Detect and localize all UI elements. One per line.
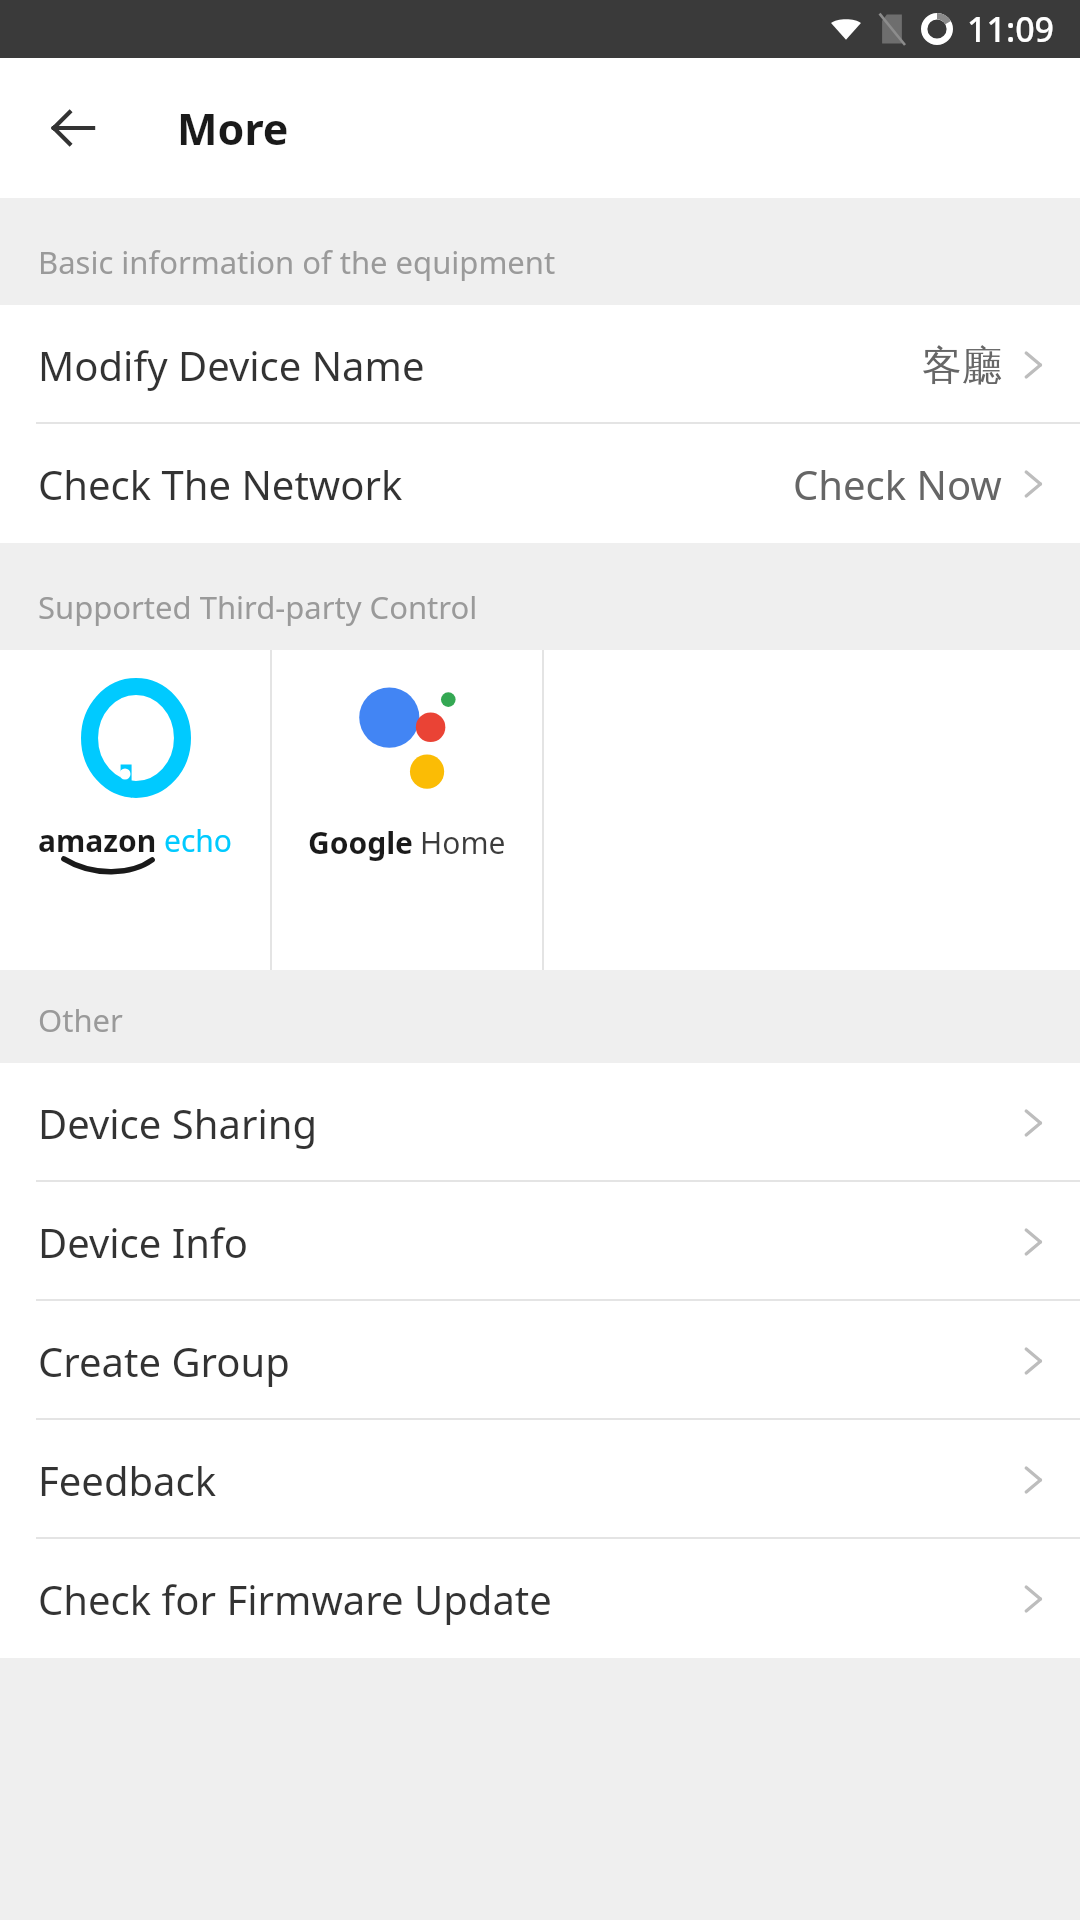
button[interactable]: amazon [0,650,270,970]
staticText: 客廳 [922,340,1002,390]
button[interactable]: Check for Firmware Update [0,1539,1080,1658]
staticText: Other [38,999,123,1041]
staticText: amazon [38,820,157,861]
staticText: Check The Network [38,457,403,511]
staticText: Supported Third-party Control [38,586,478,628]
staticText: Device Sharing [38,1096,318,1150]
button[interactable]: Check The Network [0,424,1080,543]
button[interactable]: Modify Device Name [0,305,1080,424]
staticText: Basic information of the equipment [38,241,556,283]
button[interactable]: Device Info [0,1182,1080,1301]
button[interactable]: Feedback [0,1420,1080,1539]
staticText: echo [164,820,233,861]
staticText: Check Now [793,457,1002,511]
staticText: Feedback [38,1453,217,1507]
button[interactable]: Create Group [0,1301,1080,1420]
staticText: Device Info [38,1215,248,1269]
button[interactable]: Device Sharing [0,1063,1080,1182]
button[interactable]: Google [272,650,542,970]
staticText: Google [308,822,414,863]
button[interactable]: Back [26,81,120,175]
staticText: Check for Firmware Update [38,1572,552,1626]
staticText: Modify Device Name [38,338,425,392]
staticText: Create Group [38,1334,290,1388]
staticText: Home [420,822,506,863]
staticText: More [177,99,289,158]
staticText: 11:09 [967,6,1055,52]
